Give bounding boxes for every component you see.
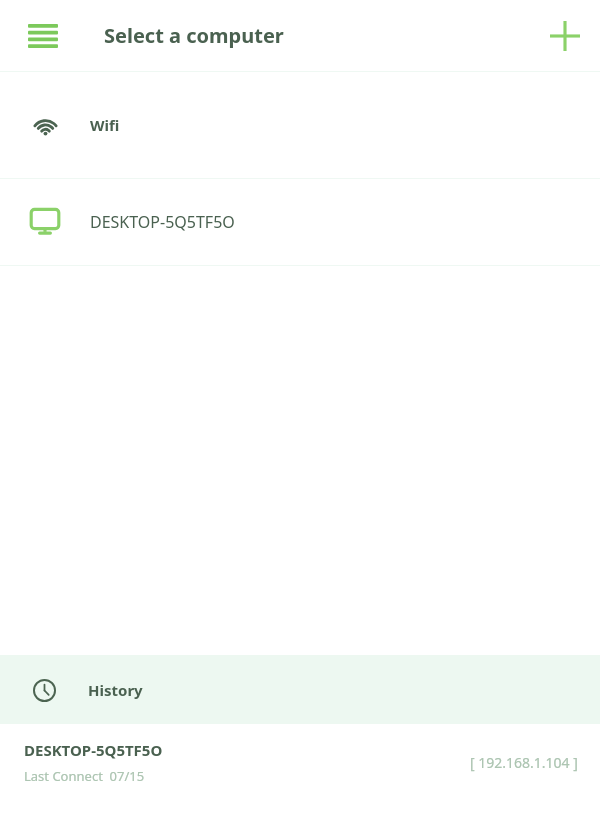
button[interactable]: History (0, 655, 600, 724)
staticText: History (88, 680, 143, 700)
staticText: Wifi (90, 115, 120, 135)
staticText: [ 192.168.1.104 ] (470, 753, 578, 772)
button[interactable]: Add computer (538, 9, 592, 63)
staticText: Last Connect 07/15 (24, 767, 145, 785)
button[interactable]: DESKTOP-5Q5TF5O (0, 179, 600, 265)
button[interactable]: DESKTOP-5Q5TF5O (0, 724, 600, 800)
button[interactable]: Wifi (0, 72, 600, 178)
staticText: DESKTOP-5Q5TF5O (90, 211, 235, 233)
staticText: Select a computer (104, 22, 284, 49)
button[interactable]: Menu (17, 10, 69, 62)
staticText: DESKTOP-5Q5TF5O (24, 740, 163, 760)
